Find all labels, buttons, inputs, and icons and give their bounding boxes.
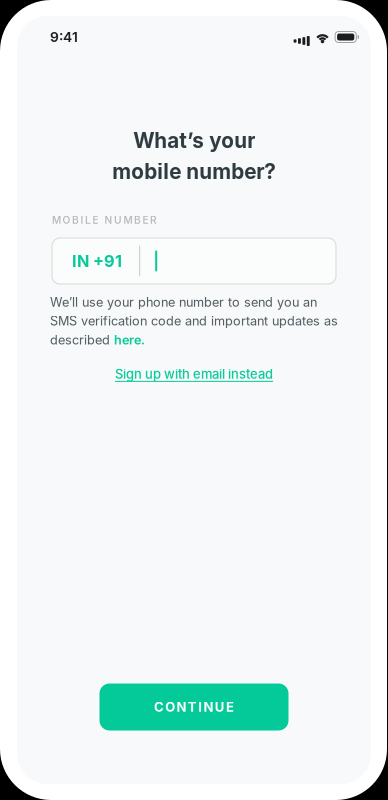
staticText: MOBILE NUMBER [52,214,157,226]
staticText: What’s your mobile number? [112,128,276,184]
button[interactable]: IN +91 [52,238,336,284]
staticText: 9:41 [50,29,78,45]
staticText: We’ll use your phone number to send you … [50,295,338,347]
button[interactable]: Sign up with email instead [107,361,281,387]
staticText: IN +91 [72,251,122,271]
staticText: CONTINUE [154,699,234,715]
staticText: Sign up with email instead [115,366,273,382]
button[interactable]: CONTINUE [99,683,288,730]
